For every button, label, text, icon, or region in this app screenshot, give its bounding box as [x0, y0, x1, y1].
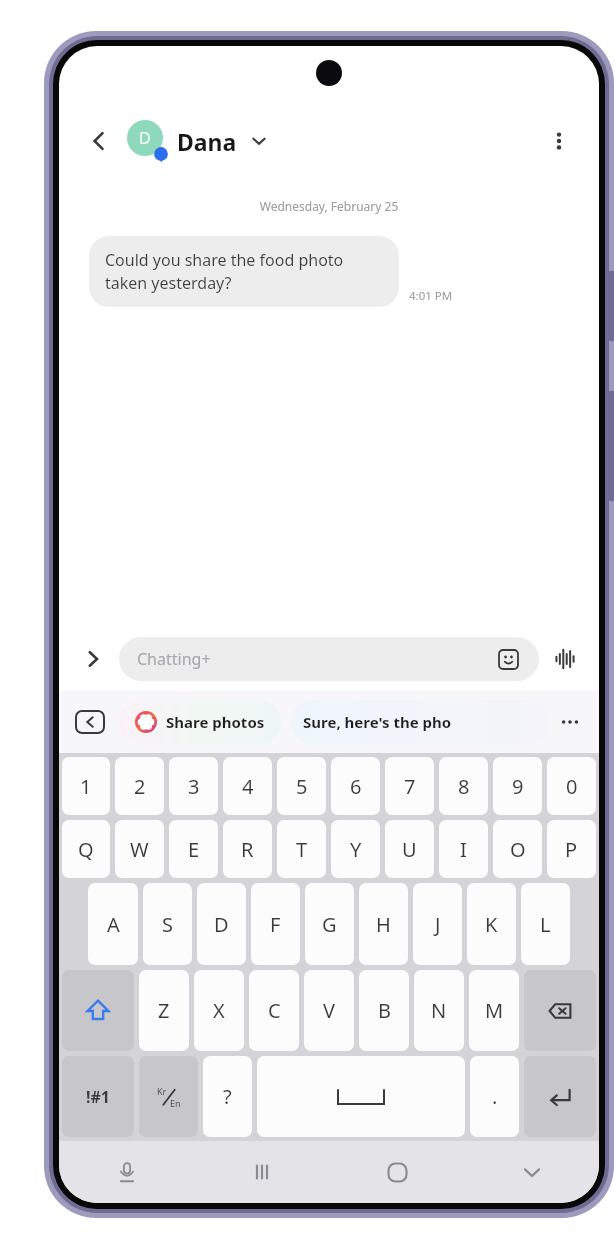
- staticText: K: [485, 911, 498, 938]
- staticText: N: [431, 997, 447, 1024]
- staticText: A: [107, 911, 120, 938]
- button[interactable]: C: [249, 970, 299, 1051]
- button[interactable]: H: [359, 883, 408, 965]
- button[interactable]: N: [414, 970, 464, 1051]
- button[interactable]: Home: [378, 1153, 416, 1191]
- button[interactable]: 8: [439, 757, 488, 815]
- button[interactable]: A: [88, 883, 138, 965]
- button[interactable]: 6: [331, 757, 380, 815]
- staticText: P: [565, 836, 578, 863]
- button[interactable]: Q: [62, 820, 110, 878]
- staticText: Q: [78, 836, 94, 863]
- button[interactable]: X: [194, 970, 244, 1051]
- staticText: 0: [566, 773, 578, 800]
- staticText: 3: [188, 773, 200, 800]
- button[interactable]: Back: [79, 121, 119, 161]
- button[interactable]: 9: [493, 757, 542, 815]
- button[interactable]: G: [305, 883, 354, 965]
- button[interactable]: Voice message: [547, 641, 583, 677]
- staticText: 4:01 PM: [409, 288, 453, 304]
- button[interactable]: I: [439, 820, 488, 878]
- button[interactable]: E: [169, 820, 218, 878]
- button[interactable]: Recent apps: [243, 1153, 281, 1191]
- staticText: V: [323, 997, 335, 1024]
- button[interactable]: 0: [547, 757, 596, 815]
- button[interactable]: More input options: [75, 641, 111, 677]
- staticText: F: [270, 911, 281, 938]
- staticText: 4: [242, 773, 254, 800]
- button[interactable]: 4: [223, 757, 272, 815]
- staticText: 1: [80, 773, 92, 800]
- button[interactable]: S: [143, 883, 192, 965]
- button[interactable]: Z: [139, 970, 189, 1051]
- button[interactable]: 3: [169, 757, 218, 815]
- button[interactable]: !#1: [62, 1056, 134, 1137]
- staticText: 8: [458, 773, 470, 800]
- staticText: D: [214, 911, 229, 938]
- button[interactable]: P: [547, 820, 596, 878]
- button[interactable]: Dana: [177, 126, 237, 157]
- staticText: Sure, here's the pho: [303, 712, 452, 732]
- button[interactable]: More options: [539, 121, 579, 161]
- button[interactable]: W: [115, 820, 164, 878]
- button[interactable]: 7: [385, 757, 434, 815]
- staticText: T: [296, 836, 308, 863]
- staticText: S: [162, 911, 173, 938]
- button[interactable]: 1: [62, 757, 110, 815]
- button[interactable]: Backspace: [524, 970, 596, 1051]
- staticText: E: [188, 836, 200, 863]
- button[interactable]: More suggestions: [555, 707, 585, 737]
- staticText: W: [130, 836, 149, 863]
- button[interactable]: L: [521, 883, 570, 965]
- staticText: C: [268, 997, 281, 1024]
- staticText: 2: [134, 773, 146, 800]
- button[interactable]: Expand: [247, 129, 271, 153]
- button[interactable]: 5: [277, 757, 326, 815]
- staticText: I: [460, 836, 467, 863]
- button[interactable]: .: [470, 1056, 519, 1137]
- staticText: O: [510, 836, 526, 863]
- staticText: R: [241, 836, 254, 863]
- button[interactable]: U: [385, 820, 434, 878]
- button[interactable]: D: [197, 883, 246, 965]
- staticText: 7: [404, 773, 416, 800]
- button[interactable]: R: [223, 820, 272, 878]
- button[interactable]: Chatting+: [119, 637, 539, 681]
- button[interactable]: 2: [115, 757, 164, 815]
- staticText: Kr: [157, 1085, 167, 1097]
- staticText: B: [378, 997, 391, 1024]
- button[interactable]: Could you share the food photo taken yes…: [89, 236, 399, 307]
- button[interactable]: Hide keyboard: [513, 1153, 551, 1191]
- staticText: En: [170, 1097, 181, 1109]
- button[interactable]: D: [127, 120, 169, 162]
- button[interactable]: Share photos: [119, 700, 281, 744]
- staticText: Z: [158, 997, 170, 1024]
- button[interactable]: M: [469, 970, 519, 1051]
- button[interactable]: Space: [257, 1056, 465, 1137]
- button[interactable]: Language: [139, 1056, 198, 1137]
- button[interactable]: F: [251, 883, 300, 965]
- button[interactable]: B: [359, 970, 409, 1051]
- button[interactable]: Voice input: [108, 1153, 146, 1191]
- button[interactable]: V: [304, 970, 354, 1051]
- staticText: X: [213, 997, 225, 1024]
- button[interactable]: Sure, here's the pho: [291, 700, 549, 744]
- staticText: Share photos: [166, 712, 265, 732]
- button[interactable]: Enter: [524, 1056, 596, 1137]
- button[interactable]: Stickers: [495, 646, 521, 672]
- button[interactable]: T: [277, 820, 326, 878]
- button[interactable]: ?: [203, 1056, 252, 1137]
- staticText: 5: [296, 773, 308, 800]
- staticText: ?: [223, 1083, 232, 1110]
- button[interactable]: Collapse suggestions: [73, 707, 107, 737]
- button[interactable]: Shift: [62, 970, 134, 1051]
- button[interactable]: O: [493, 820, 542, 878]
- button[interactable]: K: [467, 883, 516, 965]
- staticText: Chatting+: [137, 648, 211, 670]
- staticText: 9: [512, 773, 524, 800]
- staticText: Y: [350, 836, 362, 863]
- staticText: M: [485, 997, 504, 1024]
- staticText: Could you share the food photo taken yes…: [105, 249, 383, 294]
- button[interactable]: J: [413, 883, 462, 965]
- button[interactable]: Y: [331, 820, 380, 878]
